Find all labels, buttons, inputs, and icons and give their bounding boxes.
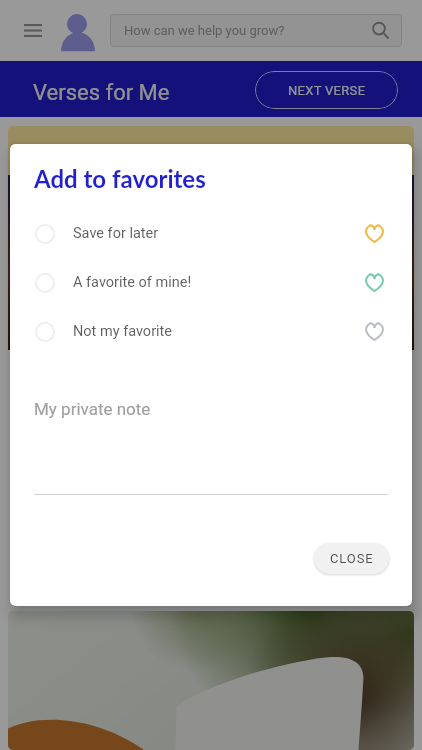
button[interactable]: Not my favorite [10, 307, 412, 356]
button[interactable]: Account [57, 6, 97, 46]
staticText: How can we help you grow? [124, 23, 285, 38]
staticText: A favorite of mine! [73, 274, 192, 291]
staticText: Verses for Me [33, 80, 170, 106]
staticText: My private note [34, 399, 151, 419]
button[interactable]: How can we help you grow? [110, 14, 402, 47]
staticText: Add to favorites [34, 164, 206, 193]
button[interactable]: NEXT VERSE [255, 71, 398, 109]
staticText: NEXT VERSE [288, 83, 366, 98]
button[interactable]: A favorite of mine! [10, 258, 412, 307]
staticText: Not my favorite [73, 323, 173, 340]
button[interactable]: Menu [12, 9, 54, 51]
staticText: Save for later [73, 225, 159, 242]
button[interactable]: CLOSE [314, 543, 389, 574]
button[interactable]: Save for later [10, 209, 412, 258]
staticText: CLOSE [330, 551, 374, 566]
